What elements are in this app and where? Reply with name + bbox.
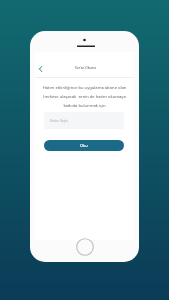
button[interactable]: Hatim Başla xyxy=(44,112,124,129)
staticText: Oku xyxy=(80,143,88,148)
button[interactable]: Back xyxy=(34,63,46,75)
staticText: Hatim etkinliğince bu uygulama abone ola… xyxy=(42,85,127,108)
staticText: Hatim Başla xyxy=(50,119,68,123)
button[interactable]: Oku xyxy=(44,140,124,151)
button[interactable]: Home xyxy=(76,238,94,256)
staticText: Kur'an Okuma xyxy=(75,66,96,70)
